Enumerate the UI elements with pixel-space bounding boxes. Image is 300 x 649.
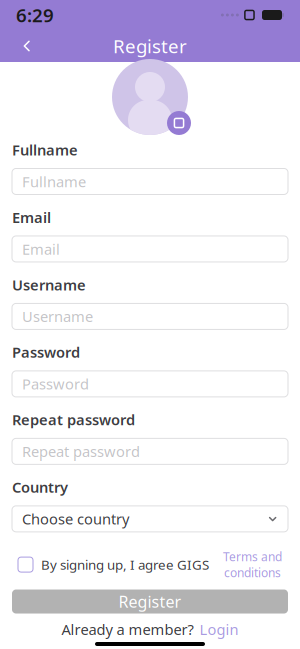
staticText: Choose state [22, 577, 110, 596]
button[interactable]: Register [12, 589, 288, 613]
staticText: Country [12, 477, 68, 497]
staticText: Register [113, 34, 187, 58]
staticText: 6:29 [16, 3, 54, 27]
button[interactable]: Login [199, 619, 238, 639]
button[interactable]: Choose state [12, 573, 288, 599]
staticText: Email [22, 239, 60, 259]
staticText: Password [12, 342, 80, 362]
button[interactable]: Edit photo [166, 110, 192, 136]
staticText: Terms and [223, 549, 282, 565]
staticText: Already a member? [61, 619, 193, 639]
staticText: Repeat password [22, 442, 140, 461]
button[interactable]: Choose country [12, 506, 288, 532]
staticText: By signing up, I agree GIGS [41, 556, 209, 573]
button[interactable]: By signing up, I agree GIGS [18, 556, 209, 573]
staticText: Fullname [22, 172, 86, 191]
button[interactable]: Repeat password [12, 438, 288, 464]
button[interactable]: Password [12, 371, 288, 397]
staticText: Username [12, 275, 86, 294]
staticText: Username [22, 307, 93, 326]
button[interactable]: Username [12, 303, 288, 329]
button[interactable]: Fullname [12, 168, 288, 194]
staticText: State [12, 545, 50, 564]
staticText: Password [22, 374, 89, 394]
staticText: Email [12, 207, 51, 227]
staticText: Login [199, 619, 238, 639]
staticText: Choose country [22, 509, 129, 529]
button[interactable]: Email [12, 236, 288, 262]
staticText: Register [118, 591, 181, 612]
staticText: Fullname [12, 140, 78, 159]
button[interactable]: Back [10, 30, 44, 62]
button[interactable]: Terms and [223, 549, 282, 581]
staticText: conditions [224, 565, 281, 580]
staticText: Repeat password [12, 410, 135, 429]
